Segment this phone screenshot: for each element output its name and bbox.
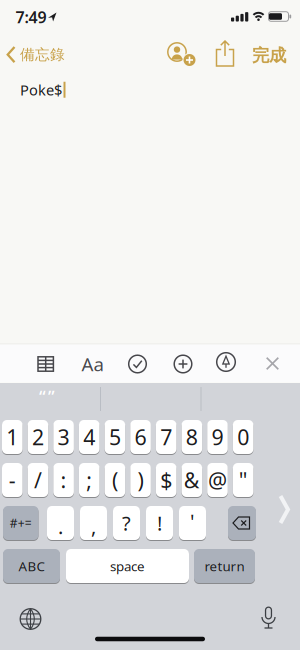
button[interactable]: Delete — [228, 506, 256, 540]
staticText: 2 — [32, 423, 44, 451]
staticText: 1 — [6, 423, 18, 451]
button[interactable]: , — [80, 506, 107, 540]
button[interactable]: 9 — [207, 420, 228, 454]
button[interactable]: ' — [179, 506, 206, 540]
button[interactable]: Dismiss Keyboard — [265, 356, 279, 370]
button[interactable]: Dictation — [260, 605, 277, 630]
staticText: , — [91, 513, 96, 539]
staticText: : — [61, 466, 67, 494]
staticText: space — [110, 557, 145, 575]
button[interactable]: Add People — [165, 41, 197, 67]
button[interactable]: 2 — [28, 420, 48, 454]
button[interactable]: " — [233, 463, 253, 497]
button[interactable]: “ ” — [2, 381, 92, 411]
button[interactable]: 6 — [130, 420, 151, 454]
staticText: 7 — [160, 423, 172, 451]
button[interactable]: Share — [214, 40, 236, 68]
staticText: & — [184, 466, 200, 494]
button[interactable]: 8 — [181, 420, 202, 454]
button[interactable]: ( — [105, 463, 125, 497]
button[interactable]: 4 — [79, 420, 99, 454]
staticText: ' — [190, 508, 195, 534]
button[interactable]: 0 — [233, 420, 253, 454]
button[interactable]: ; — [79, 463, 99, 497]
button[interactable]: Markup — [216, 352, 236, 372]
staticText: 3 — [58, 423, 70, 451]
button[interactable]: 備忘錄 — [6, 45, 65, 63]
staticText: 完成 — [252, 45, 286, 66]
button[interactable]: . — [47, 506, 74, 540]
staticText: ? — [122, 510, 131, 536]
staticText: Aa — [81, 352, 103, 376]
button[interactable]: ? — [113, 506, 140, 540]
button[interactable]: - — [2, 463, 23, 497]
staticText: 6 — [135, 423, 147, 451]
button[interactable]: 3 — [53, 420, 74, 454]
button[interactable]: return — [194, 549, 255, 583]
staticText: ) — [138, 466, 144, 494]
staticText: 7:49 — [15, 6, 46, 28]
button[interactable]: & — [181, 463, 202, 497]
staticText: 0 — [237, 423, 249, 451]
staticText: #+= — [10, 515, 32, 531]
button[interactable]: : — [53, 463, 74, 497]
button[interactable]: $ — [156, 463, 176, 497]
staticText: 備忘錄 — [20, 45, 65, 63]
staticText: “ ” — [39, 386, 55, 407]
button[interactable]: Checklist — [128, 354, 147, 373]
staticText: 8 — [186, 423, 198, 451]
staticText: $ — [160, 466, 172, 494]
staticText: ( — [112, 466, 118, 494]
staticText: ! — [157, 510, 162, 536]
staticText: . — [58, 513, 63, 540]
button[interactable]: space — [66, 549, 189, 583]
button[interactable]: @ — [207, 463, 228, 497]
staticText: 5 — [109, 423, 121, 451]
staticText: ABC — [18, 557, 44, 575]
button[interactable]: ) — [130, 463, 151, 497]
staticText: / — [34, 466, 42, 494]
button[interactable]: 完成 — [245, 43, 293, 67]
staticText: - — [9, 466, 16, 494]
button[interactable]: Format — [79, 354, 105, 374]
button[interactable]: 5 — [105, 420, 125, 454]
staticText: @ — [208, 466, 227, 494]
staticText: return — [204, 557, 244, 575]
button[interactable]: 7 — [156, 420, 176, 454]
button[interactable]: Expand Keyboard — [279, 494, 290, 524]
button[interactable]: ! — [146, 506, 173, 540]
staticText: " — [239, 466, 248, 494]
button[interactable]: ABC — [3, 549, 60, 583]
staticText: ; — [86, 466, 92, 494]
staticText: 9 — [211, 423, 223, 451]
button[interactable]: #+= — [3, 506, 38, 540]
button[interactable]: Next Keyboard — [19, 608, 41, 630]
button[interactable]: Insert Table — [37, 356, 55, 372]
button[interactable]: Add Attachment — [173, 354, 192, 373]
button[interactable]: / — [28, 463, 48, 497]
staticText: 4 — [83, 423, 95, 451]
button[interactable]: 1 — [2, 420, 23, 454]
staticText: Poke$ — [20, 80, 62, 99]
